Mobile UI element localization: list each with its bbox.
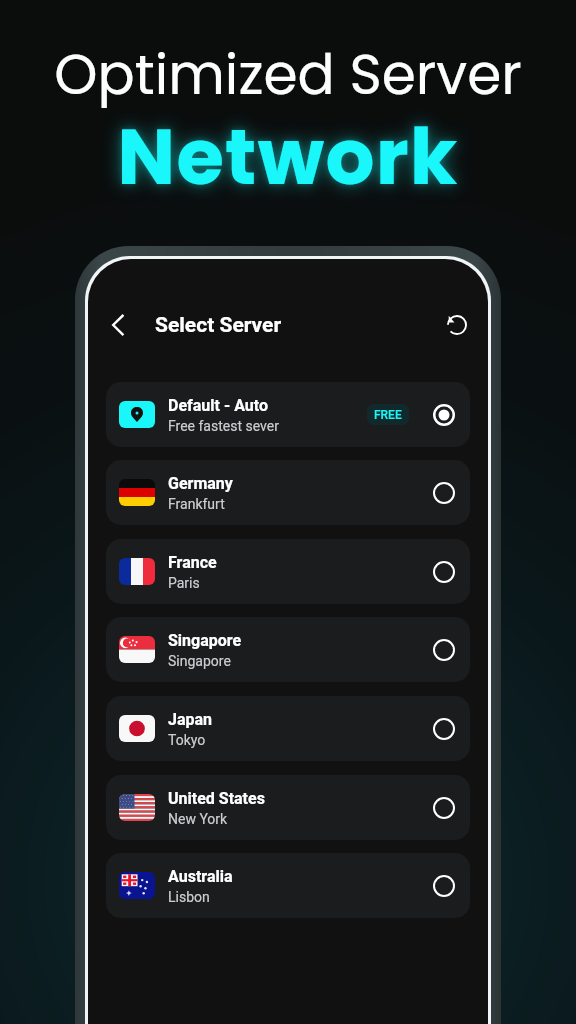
staticText: Singapore <box>168 631 242 650</box>
button[interactable]: Default - Auto <box>106 382 470 447</box>
staticText: Network <box>0 103 576 211</box>
staticText: France <box>168 553 217 572</box>
staticText: Default - Auto <box>168 396 269 415</box>
button[interactable]: France <box>106 539 470 604</box>
staticText: Network <box>0 103 576 211</box>
staticText: Lisbon <box>168 889 210 905</box>
button[interactable]: Select server <box>431 402 457 428</box>
staticText: Tokyo <box>168 732 206 748</box>
staticText: Network <box>0 103 576 211</box>
button[interactable]: Refresh <box>438 306 476 344</box>
staticText: New York <box>168 811 228 827</box>
staticText: Singapore <box>168 653 231 669</box>
button[interactable]: Select server <box>431 795 457 821</box>
button[interactable]: Select server <box>431 480 457 506</box>
staticText: United States <box>168 789 265 808</box>
staticText: Select Server <box>155 313 282 338</box>
staticText: Free fastest sever <box>168 418 279 434</box>
button[interactable]: Germany <box>106 460 470 525</box>
staticText: Australia <box>168 867 233 886</box>
staticText: Frankfurt <box>168 496 225 512</box>
staticText: Optimized Server <box>0 36 576 113</box>
button[interactable]: Select server <box>431 716 457 742</box>
button[interactable]: United States <box>106 775 470 840</box>
button[interactable]: Japan <box>106 696 470 761</box>
button[interactable]: Back <box>99 306 137 344</box>
staticText: Germany <box>168 474 233 493</box>
button[interactable]: Australia <box>106 853 470 918</box>
button[interactable]: Select server <box>431 559 457 585</box>
button[interactable]: Singapore <box>106 617 470 682</box>
staticText: Paris <box>168 575 200 591</box>
button[interactable]: Select server <box>431 637 457 663</box>
staticText: FREE <box>374 408 402 422</box>
staticText: Japan <box>168 710 213 729</box>
button[interactable]: Select server <box>431 873 457 899</box>
